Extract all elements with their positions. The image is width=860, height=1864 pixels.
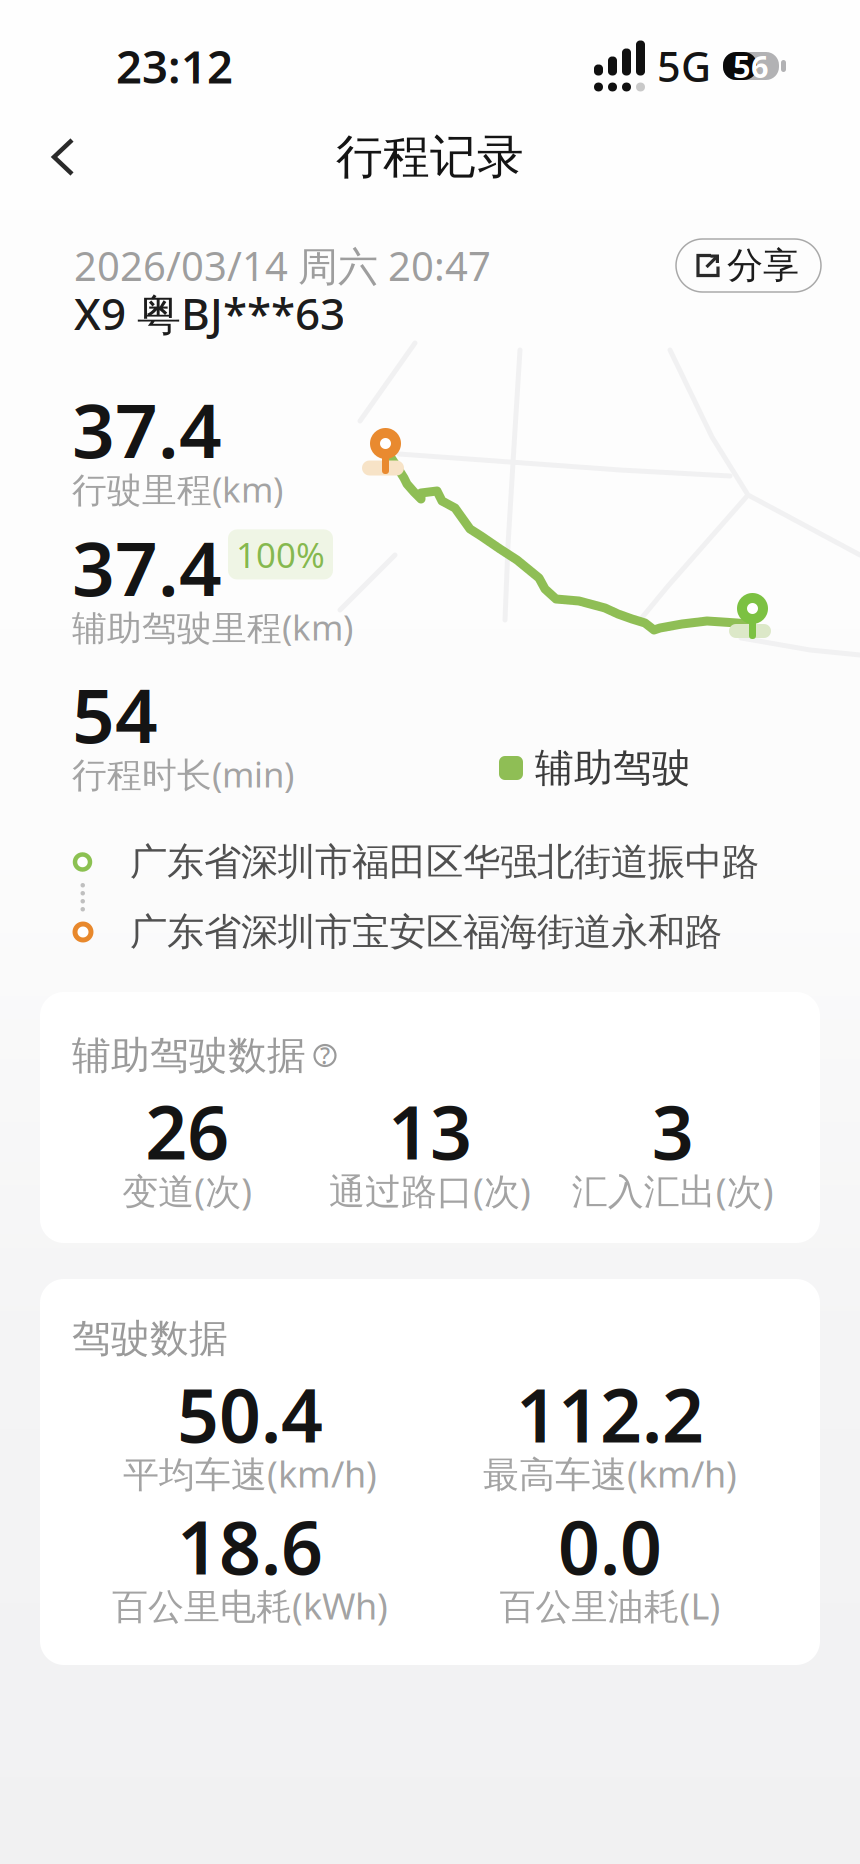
staticText: 广东省深圳市宝安区福海街道永和路	[130, 909, 722, 955]
staticText: 通过路口(次)	[329, 1167, 531, 1214]
staticText: 37.4	[72, 379, 222, 479]
staticText: 54	[72, 664, 158, 764]
staticText: 行驶里程(km)	[72, 466, 283, 512]
staticText: 112.2	[516, 1365, 704, 1463]
staticText: 0.0	[558, 1497, 662, 1595]
button[interactable]: 分享	[676, 239, 821, 292]
staticText: 100%	[236, 531, 325, 577]
staticText: 辅助驾驶里程(km)	[72, 604, 353, 650]
staticText: 23:12	[116, 36, 233, 96]
staticText: 26	[145, 1082, 229, 1180]
staticText: 辅助驾驶	[535, 744, 691, 792]
staticText: 百公里油耗(L)	[499, 1582, 720, 1629]
staticText: 驾驶数据	[72, 1315, 228, 1362]
staticText: 18.6	[177, 1497, 323, 1595]
staticText: 5G	[657, 39, 711, 93]
button[interactable]	[0, 128, 92, 186]
staticText: X9 粤BJ***63	[74, 284, 345, 342]
staticText: 变道(次)	[122, 1167, 252, 1214]
staticText: 广东省深圳市福田区华强北街道振中路	[130, 839, 759, 885]
staticText: 汇入汇出(次)	[572, 1167, 774, 1214]
staticText: 行程记录	[336, 128, 524, 186]
staticText: 13	[388, 1082, 472, 1180]
staticText: 分享	[727, 243, 799, 288]
staticText: 50.4	[177, 1365, 323, 1463]
staticText: 56	[733, 46, 769, 86]
staticText: 平均车速(km/h)	[123, 1450, 377, 1497]
staticText: 百公里电耗(kWh)	[112, 1582, 388, 1629]
staticText: 辅助驾驶数据	[72, 1032, 306, 1079]
staticText: 3	[652, 1082, 694, 1180]
staticText: 2026/03/14 周六 20:47	[74, 239, 491, 292]
staticText: 行程时长(min)	[72, 751, 294, 797]
staticText: 最高车速(km/h)	[483, 1450, 737, 1497]
staticText: 37.4	[72, 517, 222, 617]
button[interactable]: ?	[314, 1044, 336, 1066]
staticText: ?	[320, 1040, 330, 1070]
